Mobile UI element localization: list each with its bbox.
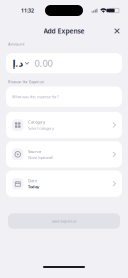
staticText: Reason for Expense <box>8 79 44 84</box>
button[interactable]: Save Expense <box>8 213 120 229</box>
staticText: Category <box>28 119 45 125</box>
button[interactable]: Source <box>6 141 122 167</box>
staticText: Date <box>28 178 37 183</box>
staticText: Source <box>28 149 41 154</box>
staticText: Today <box>28 184 39 189</box>
staticText: د.إ <box>12 57 23 69</box>
button[interactable]: Date <box>6 170 122 197</box>
staticText: 0.00 <box>34 57 52 69</box>
staticText: Save Expense <box>51 218 76 224</box>
staticText: What was this expense for? <box>12 94 59 99</box>
button[interactable]: Close <box>110 24 124 38</box>
button[interactable]: Category <box>6 112 122 138</box>
staticText: None (optional) <box>28 155 53 160</box>
staticText: 11:32 <box>21 7 34 14</box>
staticText: Select category <box>28 125 54 131</box>
button[interactable]: د.إ <box>12 57 29 69</box>
staticText: Amount <box>8 41 25 47</box>
staticText: Add Expense <box>43 26 84 36</box>
